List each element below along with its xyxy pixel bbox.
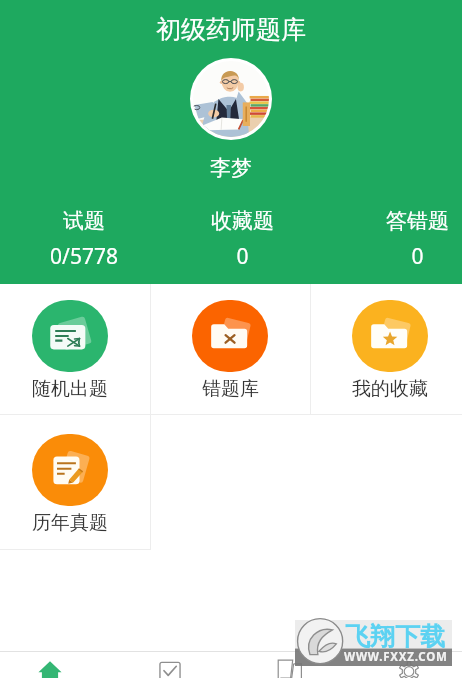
button[interactable]: 试题	[24, 204, 144, 274]
button[interactable]: Papers	[230, 652, 350, 678]
staticText: 飞翔下载	[345, 621, 445, 652]
staticText: 答错题	[386, 208, 449, 234]
button[interactable]: 错题库	[155, 282, 305, 400]
staticText: 0	[236, 242, 249, 271]
staticText: 0	[411, 242, 424, 271]
staticText: 李梦	[210, 155, 252, 181]
staticText: 我的收藏	[352, 377, 428, 400]
staticText: 错题库	[202, 377, 259, 400]
button[interactable]: Settings	[349, 652, 462, 678]
button[interactable]: 我的收藏	[315, 282, 462, 400]
staticText: 0/5778	[50, 242, 118, 271]
button[interactable]: 历年真题	[0, 416, 145, 534]
button[interactable]: Home	[0, 652, 110, 678]
button[interactable]: 答错题	[357, 204, 462, 274]
button[interactable]: Exercises	[110, 652, 230, 678]
button[interactable]: 收藏题	[182, 204, 302, 274]
staticText: 初级药师题库	[156, 14, 306, 45]
button[interactable]: 随机出题	[0, 282, 145, 400]
staticText: 试题	[63, 208, 105, 234]
staticText: WWW.FXXZ.COM	[344, 649, 448, 665]
staticText: 历年真题	[32, 511, 108, 534]
staticText: 随机出题	[32, 377, 108, 400]
staticText: 收藏题	[211, 208, 274, 234]
